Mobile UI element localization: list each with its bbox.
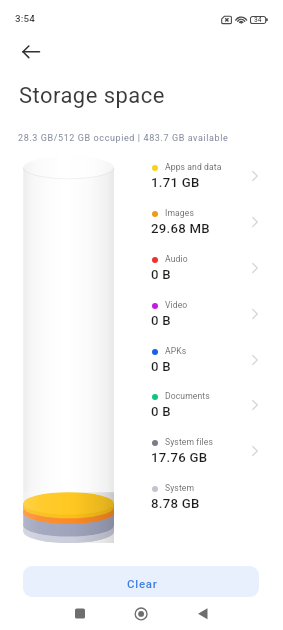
staticText: Apps and data <box>165 162 222 172</box>
button[interactable]: APKs <box>140 343 283 387</box>
button[interactable]: Back <box>10 39 50 63</box>
staticText: 17.76 GB <box>151 450 208 465</box>
button[interactable]: Images <box>140 205 283 249</box>
staticText: Images <box>165 208 194 218</box>
staticText: Video <box>165 300 188 310</box>
staticText: 1.71 GB <box>151 175 200 190</box>
staticText: 0 B <box>151 359 171 374</box>
staticText: Clear <box>127 577 158 590</box>
staticText: 28.3 GB/512 GB occupied | 483.7 GB avail… <box>18 133 229 144</box>
staticText: Documents <box>165 391 210 401</box>
staticText: 3:54 <box>15 13 35 24</box>
staticText: System <box>165 483 195 493</box>
staticText: 8.78 GB <box>151 496 200 511</box>
staticText: System files <box>165 437 213 447</box>
button[interactable]: System <box>140 480 283 524</box>
staticText: Storage space <box>19 83 165 109</box>
button[interactable]: Apps and data <box>140 159 283 203</box>
staticText: APKs <box>165 346 187 356</box>
staticText: 0 B <box>151 267 171 282</box>
staticText: 0 B <box>151 404 171 419</box>
button[interactable]: System files <box>140 434 283 478</box>
staticText: 29.68 MB <box>151 221 210 236</box>
staticText: 34 <box>254 16 262 24</box>
staticText: Audio <box>165 254 188 264</box>
button[interactable]: Recent apps <box>66 600 94 628</box>
button[interactable]: Back <box>189 600 217 628</box>
button[interactable]: Home <box>127 600 155 628</box>
button[interactable]: Documents <box>140 388 283 432</box>
staticText: 0 B <box>151 313 171 328</box>
button[interactable]: Video <box>140 297 283 341</box>
button[interactable]: Audio <box>140 251 283 295</box>
button[interactable]: Clear <box>23 566 259 597</box>
